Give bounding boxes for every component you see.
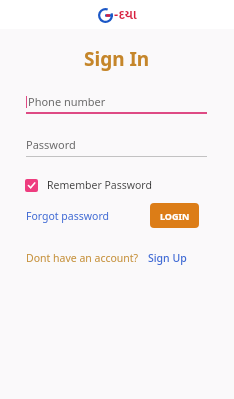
- button[interactable]: Sign Up: [147, 248, 188, 268]
- staticText: LOGIN: [160, 210, 190, 222]
- staticText: Sign In: [84, 46, 150, 72]
- button[interactable]: Password: [26, 137, 207, 157]
- button[interactable]: LOGIN: [150, 203, 199, 228]
- other: G-daya logo: [98, 4, 137, 26]
- staticText: -દયા: [114, 4, 137, 26]
- staticText: Remember Password: [47, 178, 152, 192]
- staticText: Sign Up: [148, 251, 187, 265]
- staticText: Forgot password: [26, 209, 109, 223]
- staticText: Phone number: [28, 94, 106, 109]
- staticText: Password: [26, 137, 76, 152]
- button[interactable]: Phone number: [26, 94, 207, 114]
- staticText: Dont have an account?: [26, 251, 139, 265]
- button[interactable]: Remember Password: [25, 176, 158, 194]
- button[interactable]: Forgot password: [26, 204, 109, 228]
